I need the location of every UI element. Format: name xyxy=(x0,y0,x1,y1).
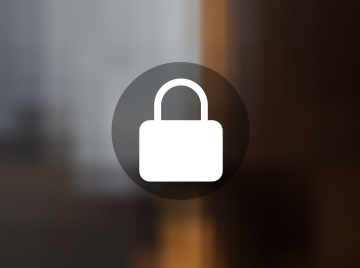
button[interactable]: Locked content xyxy=(0,0,360,268)
